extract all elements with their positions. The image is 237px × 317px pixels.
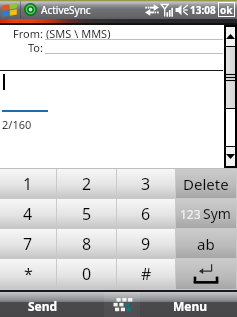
staticText: ab (197, 234, 215, 254)
staticText: ActiveSync (41, 3, 91, 17)
staticText: 6 (141, 203, 151, 225)
button[interactable]: Scroll down (226, 147, 235, 166)
staticText: 2/160 (2, 117, 32, 132)
staticText: ok (220, 3, 233, 17)
button[interactable]: 1 (0, 169, 56, 198)
button[interactable]: Send (0, 292, 104, 317)
button[interactable]: Menu (140, 292, 237, 317)
button[interactable]: 6 (117, 199, 175, 228)
button[interactable]: 7 (0, 229, 56, 258)
staticText: 4 (23, 203, 33, 225)
staticText: 9 (141, 233, 151, 255)
staticText: To: (28, 40, 43, 55)
staticText: 13:08 (190, 3, 216, 17)
staticText: Menu (173, 298, 208, 314)
button[interactable]: 2 (57, 169, 116, 198)
staticText: (SMS \ MMS) (46, 26, 111, 41)
staticText: 123 (180, 206, 201, 222)
staticText: Send (28, 298, 58, 314)
button[interactable]: Delete (176, 169, 236, 198)
button[interactable]: 5 (57, 199, 116, 228)
staticText: 5 (82, 203, 92, 225)
button[interactable]: Scroll up (226, 27, 235, 46)
staticText: Delete (183, 174, 229, 194)
button[interactable]: Keyboard (104, 292, 140, 317)
staticText: 7 (23, 233, 33, 255)
button[interactable]: Sym (176, 199, 236, 228)
button[interactable]: 8 (57, 229, 116, 258)
button[interactable]: 4 (0, 199, 56, 228)
staticText: # (141, 263, 152, 285)
button[interactable]: 0 (57, 259, 116, 289)
staticText: 0 (82, 263, 92, 285)
button[interactable]: Enter (176, 259, 236, 289)
button[interactable]: 9 (117, 229, 175, 258)
staticText: 2 (82, 173, 92, 195)
button[interactable]: # (117, 259, 175, 289)
button[interactable]: * (0, 259, 56, 289)
button[interactable]: Scroll thumb (226, 47, 235, 108)
button[interactable]: 3 (117, 169, 175, 198)
button[interactable]: OK (218, 2, 235, 17)
staticText: Sym (203, 204, 231, 223)
button[interactable]: ab (176, 229, 236, 258)
staticText: 1 (23, 173, 33, 195)
staticText: * (24, 263, 33, 285)
staticText: 8 (82, 233, 92, 255)
staticText: 3 (141, 173, 151, 195)
staticText: From: (13, 26, 43, 41)
